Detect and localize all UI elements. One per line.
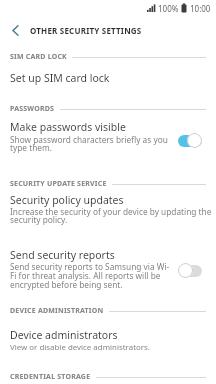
- button[interactable]: Send security reports: [0, 245, 216, 293]
- staticText: Show password characters briefly as you …: [10, 134, 168, 154]
- button[interactable]: Set up SIM card lock: [0, 67, 216, 89]
- staticText: View or disable device administrators.: [10, 342, 150, 353]
- staticText: CREDENTIAL STORAGE: [10, 372, 91, 382]
- staticText: Set up SIM card lock: [10, 71, 110, 85]
- button[interactable]: [178, 263, 202, 278]
- staticText: PASSWORDS: [10, 104, 55, 114]
- button[interactable]: Make passwords visible: [0, 117, 216, 157]
- staticText: SIM CARD LOCK: [10, 52, 67, 62]
- staticText: Increase the security of your device by …: [10, 206, 212, 226]
- staticText: SECURITY UPDATE SERVICE: [10, 179, 107, 189]
- button[interactable]: [178, 133, 202, 148]
- button[interactable]: [4, 19, 26, 41]
- button[interactable]: Security policy updates: [0, 190, 216, 226]
- staticText: Device administrators: [10, 328, 118, 342]
- staticText: Send security reports: [10, 248, 115, 262]
- button[interactable]: Device administrators: [0, 325, 216, 353]
- staticText: 100%: [158, 3, 179, 14]
- staticText: Security policy updates: [10, 193, 124, 207]
- staticText: DEVICE ADMINISTRATION: [10, 306, 104, 316]
- staticText: OTHER SECURITY SETTINGS: [30, 25, 142, 36]
- staticText: Make passwords visible: [10, 120, 126, 134]
- staticText: Send security reports to Samsung via Wi-…: [10, 261, 170, 290]
- staticText: 10:00: [190, 3, 211, 14]
